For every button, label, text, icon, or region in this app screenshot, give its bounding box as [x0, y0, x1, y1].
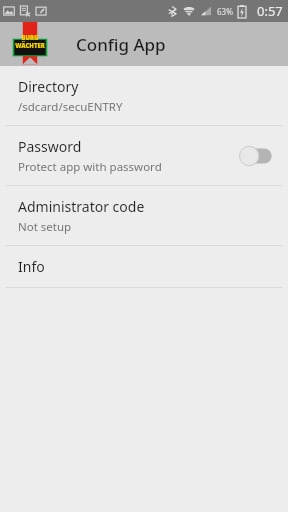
button[interactable]: Password — [0, 126, 288, 185]
staticText: Administrator code — [18, 197, 145, 216]
button[interactable]: Administrator code — [0, 186, 288, 245]
button[interactable]: Directory — [0, 66, 288, 125]
staticText: BURG — [21, 34, 39, 42]
staticText: /sdcard/secuENTRY — [18, 99, 123, 115]
button[interactable]: Protect app with password toggle — [236, 145, 274, 167]
button[interactable]: Info — [0, 246, 288, 287]
staticText: Config App — [76, 33, 166, 56]
staticText: Protect app with password — [18, 159, 162, 175]
staticText: WÄCHTER — [15, 42, 45, 50]
staticText: Directory — [18, 77, 79, 96]
staticText: Info — [18, 257, 45, 276]
staticText: 63% — [217, 6, 233, 17]
staticText: Password — [18, 137, 82, 156]
button[interactable]: BURG WÄCHTER logo — [12, 22, 48, 66]
staticText: Not setup — [18, 219, 72, 235]
staticText: 0:57 — [257, 2, 283, 20]
